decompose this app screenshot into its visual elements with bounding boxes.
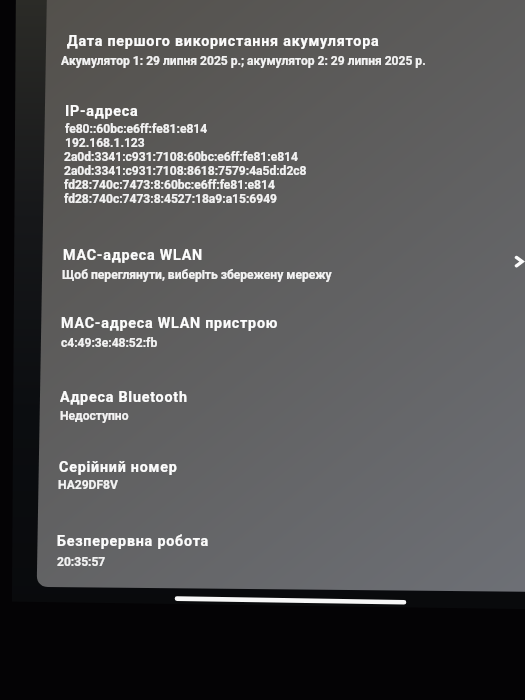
staticText: Недоступно [60, 409, 129, 423]
staticText: Безперервна робота [57, 533, 210, 550]
staticText: c4:49:3e:48:52:fb [61, 336, 158, 350]
staticText: Дата першого використання акумулятора [67, 33, 380, 50]
staticText: fd28:740c:7473:8:60bc:e6ff:fe81:e814 [64, 178, 275, 192]
staticText: Щоб переглянути, виберіть збережену мере… [62, 268, 332, 282]
button[interactable] [40, 88, 525, 212]
staticText: MAC-адреса WLAN [63, 247, 203, 264]
staticText: fe80::60bc:e6ff:fe81:e814 [65, 122, 208, 136]
button[interactable] [40, 519, 525, 575]
staticText: Серійний номер [59, 459, 178, 476]
button[interactable] [40, 301, 525, 356]
button[interactable]: Home gesture handle [170, 592, 412, 609]
staticText: HA29DF8V [58, 478, 118, 492]
staticText: MAC-адреса WLAN пристрою [61, 315, 279, 332]
staticText: Акумулятор 1: 29 липня 2025 р.; акумулят… [61, 54, 426, 68]
staticText: 2a0d:3341:c931:7108:8618:7579:4a5d:d2c8 [64, 164, 307, 178]
button[interactable] [40, 18, 525, 76]
button[interactable] [40, 374, 525, 429]
staticText: fd28:740c:7473:8:4527:18a9:a15:6949 [64, 192, 277, 206]
staticText: IP-адреса [65, 103, 139, 120]
staticText: Адреса Bluetooth [60, 389, 188, 406]
button[interactable] [40, 233, 525, 288]
staticText: 20:35:57 [57, 555, 106, 569]
button[interactable] [40, 445, 525, 499]
staticText: 2a0d:3341:c931:7108:60bc:e6ff:fe81:e814 [64, 150, 298, 164]
staticText: 192.168.1.123 [65, 136, 145, 150]
button[interactable]: Show more [505, 248, 525, 276]
